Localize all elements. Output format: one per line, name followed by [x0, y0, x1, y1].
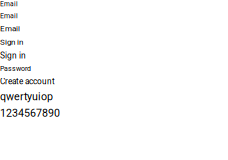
staticText: Password	[0, 64, 31, 73]
staticText: 1234567890	[0, 107, 60, 119]
staticText: Email	[0, 24, 20, 33]
staticText: qwertyuiop	[0, 90, 53, 103]
staticText: Sign in	[0, 51, 26, 60]
staticText: Create account	[0, 77, 55, 86]
staticText: Email	[0, 0, 18, 8]
staticText: Sign in	[0, 37, 23, 47]
staticText: Email	[0, 12, 18, 20]
